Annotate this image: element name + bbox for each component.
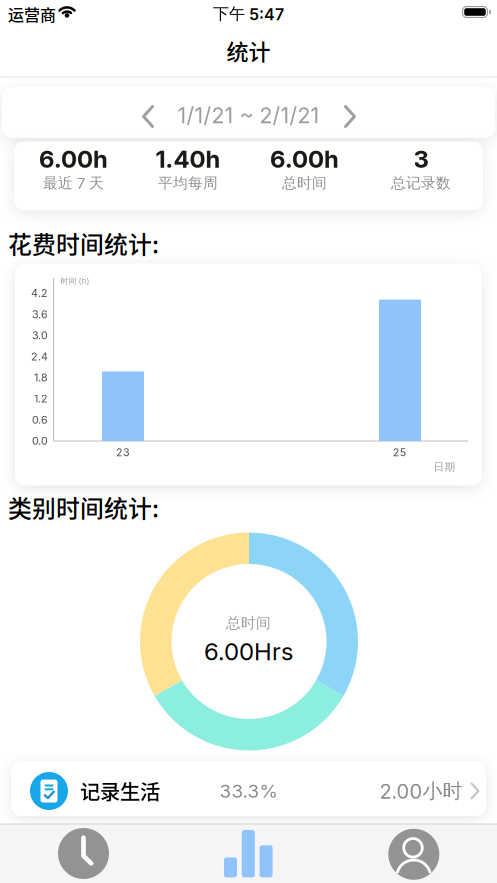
staticText: 2.00小时	[379, 779, 462, 803]
staticText: 统计	[226, 35, 270, 66]
staticText: 0.0	[32, 435, 48, 447]
staticText: 总时间	[226, 614, 271, 632]
staticText: 3	[413, 145, 428, 173]
staticText: 平均每周	[158, 174, 218, 192]
staticText: 6.00h	[39, 145, 108, 173]
staticText: 记录生活	[80, 776, 160, 806]
staticText: 1/1/21 ~ 2/1/21	[177, 103, 319, 128]
button[interactable]: 记录生活	[11, 761, 486, 816]
button[interactable]: Previous period	[142, 105, 154, 128]
staticText: 1.8	[34, 371, 48, 384]
staticText: 25	[393, 446, 406, 459]
staticText: 23	[116, 446, 130, 459]
staticText: 6.00Hrs	[204, 637, 293, 666]
staticText: 4.2	[31, 287, 48, 299]
staticText: 总记录数	[391, 174, 451, 192]
staticText: 3.6	[32, 308, 48, 321]
button[interactable]: 我的	[334, 825, 494, 883]
staticText: 3.0	[32, 329, 48, 342]
staticText: 1.2	[34, 392, 48, 405]
staticText: 33.3%	[219, 780, 277, 802]
staticText: 时间 (h)	[60, 276, 89, 286]
staticText: 下午 5:47	[213, 4, 284, 24]
staticText: 日期	[433, 460, 455, 473]
staticText: 1.40h	[155, 145, 220, 173]
staticText: 最近 7 天	[43, 174, 104, 192]
staticText: 0.6	[32, 413, 48, 426]
button[interactable]: Next period	[344, 105, 356, 128]
staticText: 2.4	[31, 350, 48, 363]
button[interactable]: 记录	[3, 824, 163, 882]
button[interactable]: 1/1/21 ~ 2/1/21	[2, 87, 495, 138]
staticText: 总时间	[282, 174, 327, 192]
button[interactable]: 统计	[168, 825, 328, 883]
staticText: 类别时间统计:	[8, 490, 159, 524]
staticText: 花费时间统计:	[8, 226, 159, 260]
staticText: 运营商	[8, 2, 56, 26]
staticText: 6.00h	[270, 145, 339, 173]
